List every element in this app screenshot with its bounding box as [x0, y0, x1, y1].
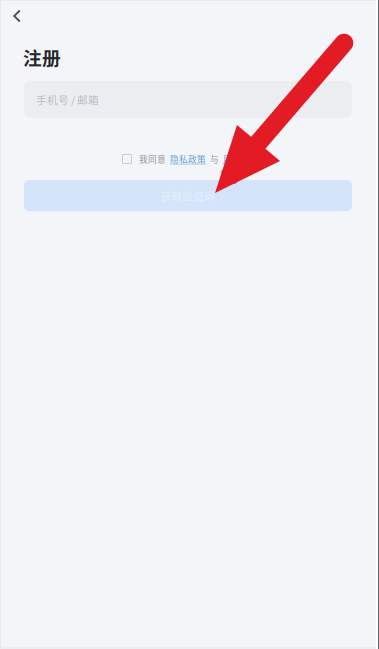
- button[interactable]: 隐私政策: [166, 153, 206, 165]
- staticText: 获取验证码: [160, 188, 215, 203]
- button[interactable]: Back: [3, 2, 31, 30]
- staticText: 与: [210, 153, 219, 165]
- staticText: 手机号 / 邮箱: [36, 92, 99, 107]
- button[interactable]: 用户协议: [219, 153, 259, 165]
- button[interactable]: Agree to terms: [119, 151, 135, 167]
- staticText: 注册: [23, 43, 61, 70]
- staticText: 我同意: [139, 153, 166, 165]
- staticText: 隐私政策: [170, 153, 206, 165]
- staticText: 用户协议: [223, 153, 259, 165]
- button[interactable]: 获取验证码: [24, 180, 352, 211]
